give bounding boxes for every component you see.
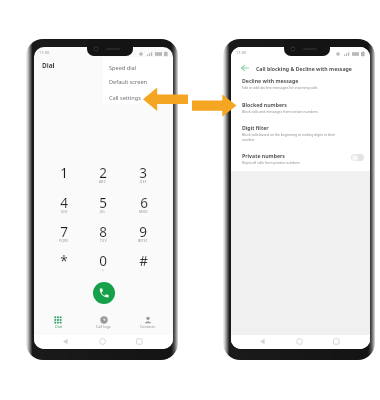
- staticText: 5: [99, 194, 107, 212]
- button[interactable]: 9: [124, 223, 162, 251]
- staticText: TUV: [100, 239, 107, 243]
- staticText: Block calls based on the beginning or en…: [242, 132, 345, 142]
- staticText: Dial: [42, 61, 55, 70]
- staticText: 3: [139, 164, 147, 182]
- staticText: 6: [140, 194, 148, 212]
- staticText: WXYZ: [138, 239, 148, 243]
- staticText: Call blocking & Decline with message: [256, 65, 352, 72]
- staticText: *: [60, 252, 68, 270]
- staticText: 11:00: [236, 50, 247, 55]
- button[interactable]: Back: [239, 62, 251, 74]
- staticText: 8: [99, 223, 107, 241]
- staticText: GHI: [61, 210, 68, 214]
- staticText: 2: [99, 164, 107, 182]
- staticText: Contacts: [140, 324, 156, 329]
- staticText: Call logs: [96, 324, 111, 329]
- button[interactable]: 0: [84, 252, 122, 280]
- button[interactable]: 2: [84, 164, 122, 192]
- button[interactable]: Dial: [42, 316, 74, 338]
- button[interactable]: *: [45, 252, 83, 280]
- button[interactable]: Digit filter: [231, 124, 370, 146]
- button[interactable]: Private numbers: [231, 152, 370, 174]
- button[interactable]: 6: [124, 194, 162, 222]
- staticText: 7: [60, 223, 68, 241]
- staticText: 9: [139, 223, 147, 241]
- staticText: 0: [99, 252, 107, 270]
- staticText: JKL: [100, 210, 106, 214]
- staticText: Block calls and messages from certain nu…: [242, 109, 318, 114]
- button[interactable]: 4: [45, 194, 83, 222]
- staticText: +: [102, 268, 105, 272]
- staticText: Reject all calls from private numbers: [242, 160, 300, 165]
- button[interactable]: 8: [84, 223, 122, 251]
- staticText: ABC: [99, 180, 107, 184]
- button[interactable]: Blocked numbers: [231, 101, 370, 123]
- staticText: 4: [60, 194, 68, 212]
- button[interactable]: Speed dial: [103, 62, 173, 73]
- staticText: Decline with message: [242, 77, 299, 84]
- staticText: Digit filter: [242, 124, 269, 131]
- button[interactable]: 5: [84, 194, 122, 222]
- button[interactable]: Call settings: [103, 92, 173, 103]
- staticText: Blocked numbers: [242, 101, 287, 108]
- staticText: Speed dial: [109, 64, 137, 72]
- button[interactable]: Contacts: [132, 316, 164, 338]
- staticText: Dial: [55, 324, 62, 329]
- staticText: Edit or add decline messages for incomin…: [242, 85, 318, 90]
- staticText: Private numbers: [242, 152, 285, 159]
- staticText: #: [139, 252, 148, 270]
- button[interactable]: Decline with message: [231, 77, 370, 99]
- button[interactable]: Default screen: [103, 76, 173, 87]
- button[interactable]: #: [124, 252, 162, 280]
- staticText: MNO: [139, 210, 148, 214]
- button[interactable]: Call: [93, 282, 115, 304]
- button[interactable]: 1: [45, 164, 83, 192]
- button[interactable]: Call logs: [87, 316, 119, 338]
- button[interactable]: 7: [45, 223, 83, 251]
- staticText: 1: [60, 164, 68, 182]
- staticText: DEF: [140, 180, 147, 184]
- staticText: 11:00: [39, 50, 50, 55]
- staticText: Default screen: [109, 78, 148, 86]
- button[interactable]: 3: [124, 164, 162, 192]
- staticText: Call settings: [109, 94, 141, 102]
- staticText: PQRS: [59, 239, 69, 243]
